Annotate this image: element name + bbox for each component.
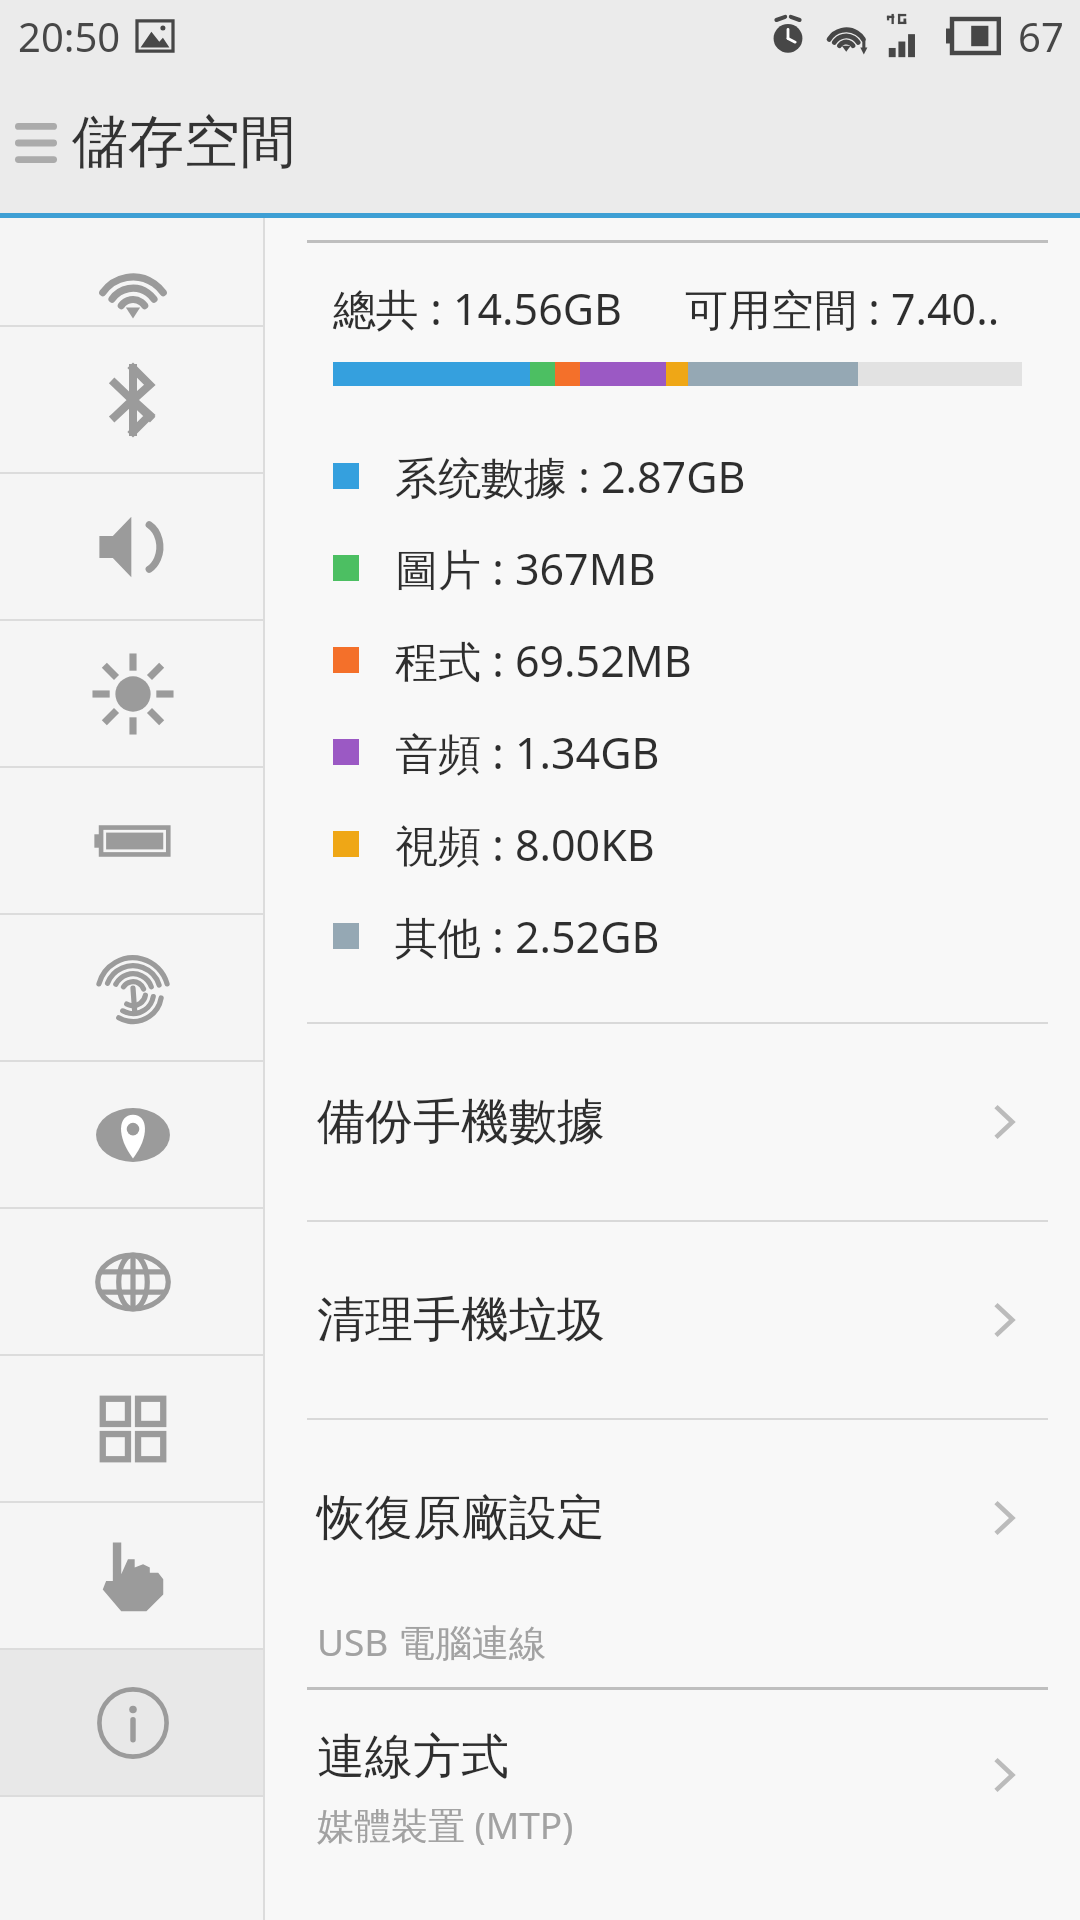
staticText: 音頻 : 1.34GB [395, 723, 660, 782]
staticText: 總共 : 14.56GB [333, 279, 623, 338]
staticText: 67 [1018, 9, 1064, 63]
button[interactable]: Apps [0, 1356, 265, 1501]
staticText: 恢復原廠設定 [317, 1488, 605, 1548]
button[interactable]: Bluetooth [0, 327, 265, 472]
staticText: 儲存空間 [72, 107, 296, 178]
staticText: 系统數據 : 2.87GB [395, 447, 746, 506]
button[interactable]: Menu [0, 72, 72, 213]
button[interactable]: Network [0, 1209, 265, 1354]
button[interactable]: 視頻 : 8.00KB [265, 798, 1080, 890]
button[interactable]: Gestures [0, 1503, 265, 1648]
staticText: 備份手機數據 [317, 1092, 605, 1152]
staticText: 程式 : 69.52MB [395, 631, 692, 690]
button[interactable]: 連線方式 [265, 1690, 1080, 1860]
button[interactable]: About phone [0, 1650, 265, 1795]
button[interactable]: 圖片 : 367MB [265, 522, 1080, 614]
staticText: 其他 : 2.52GB [395, 907, 660, 966]
staticText: 連線方式 [317, 1727, 509, 1787]
staticText: 清理手機垃圾 [317, 1290, 605, 1350]
button[interactable]: 其他 : 2.52GB [265, 890, 1080, 982]
staticText: 視頻 : 8.00KB [395, 815, 655, 874]
button[interactable]: Sound [0, 474, 265, 619]
staticText: 20:50 [18, 9, 121, 63]
staticText: 媒體裝置 (MTP) [317, 1799, 574, 1850]
button[interactable]: Fingerprint [0, 915, 265, 1060]
staticText: 可用空間 : 7.40.. [685, 279, 1000, 338]
button[interactable]: Brightness [0, 621, 265, 766]
button[interactable]: Battery [0, 768, 265, 913]
button[interactable]: 恢復原廠設定 [265, 1420, 1080, 1616]
button[interactable]: 程式 : 69.52MB [265, 614, 1080, 706]
button[interactable]: Wi-Fi [0, 218, 265, 325]
button[interactable]: 音頻 : 1.34GB [265, 706, 1080, 798]
button[interactable]: 清理手機垃圾 [265, 1222, 1080, 1418]
button[interactable]: Location [0, 1062, 265, 1207]
button[interactable]: 系统數據 : 2.87GB [265, 430, 1080, 522]
button[interactable]: 備份手機數據 [265, 1024, 1080, 1220]
staticText: USB 電腦連線 [317, 1616, 547, 1667]
staticText: 圖片 : 367MB [395, 539, 656, 598]
